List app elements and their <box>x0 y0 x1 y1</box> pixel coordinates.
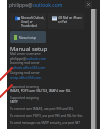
staticText: iOS Mail on iPhone <box>58 16 82 20</box>
staticText: philippe@ <box>10 56 26 61</box>
button[interactable]: Manual setup <box>10 31 46 43</box>
staticText: Mail server username <box>10 52 41 56</box>
staticText: IMAP4, POP3 over SSL/TLS, IMAP4 over SSL <box>10 89 71 93</box>
button[interactable]: Microsoft Outlook, <box>10 13 46 29</box>
staticText: Manual setup <box>19 36 37 40</box>
staticText: Thunderbird <box>21 24 37 28</box>
staticText: Microsoft Outlook, <box>21 16 45 20</box>
staticText: outlook.com <box>33 2 63 9</box>
staticText: outlook.com <box>26 56 46 61</box>
staticText: To connect over IMAP4, use port 993 and … <box>10 107 74 111</box>
button[interactable]: Close <box>85 1 92 8</box>
staticText: Manual setup <box>10 45 48 53</box>
staticText: SMTP <box>10 100 18 104</box>
staticText: philippe@ <box>9 2 33 9</box>
staticText: Outgoing mail server <box>10 71 40 75</box>
staticText: To connect over POP3, use port 995 and S… <box>10 114 83 118</box>
staticText: outlook.office365.com <box>10 65 46 70</box>
staticText: smtp.office365.com <box>10 75 42 80</box>
button[interactable]: iOS Mail on iPhone <box>48 13 84 29</box>
staticText: or iPad <box>58 20 67 24</box>
staticText: Supported incoming <box>10 85 39 89</box>
staticText: To send messages via SMTP security, use … <box>10 121 81 125</box>
staticText: Supported outgoing <box>10 96 39 100</box>
staticText: Gmail, or <box>21 20 33 24</box>
staticText: Incoming mail server <box>10 61 40 65</box>
